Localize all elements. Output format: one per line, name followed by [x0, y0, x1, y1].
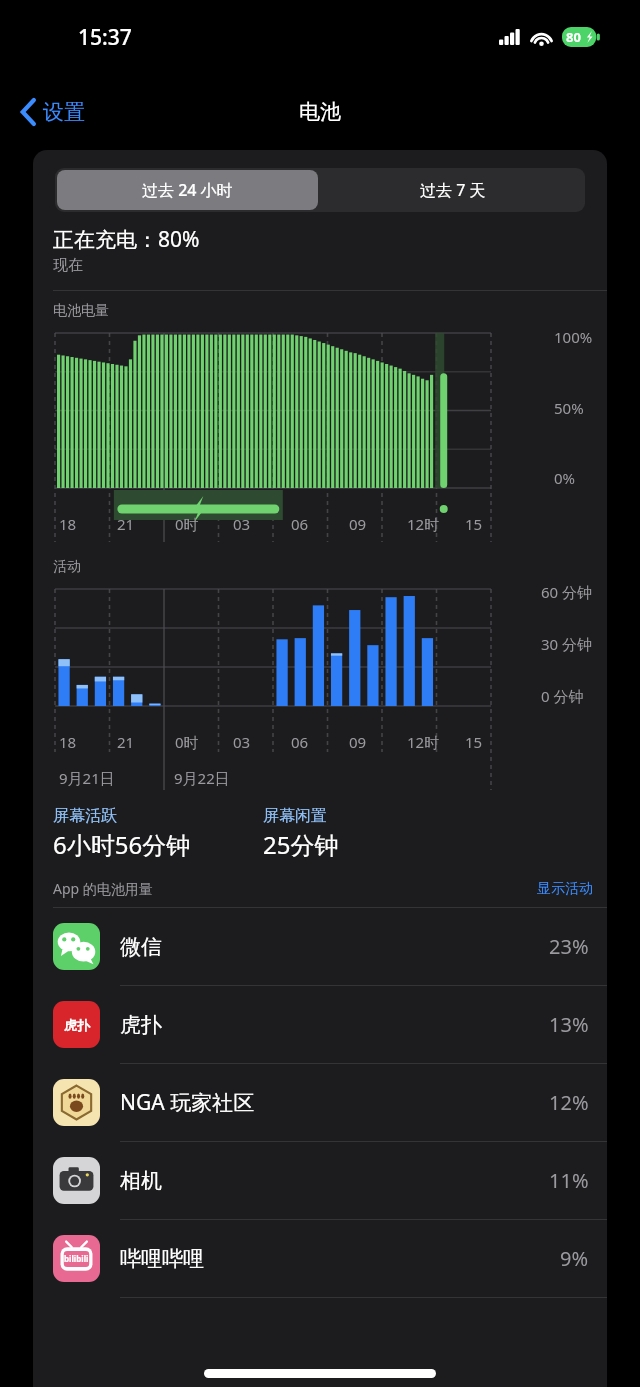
staticText: 60 分钟: [541, 582, 593, 602]
button[interactable]: 显示活动: [537, 880, 593, 898]
button[interactable]: bilibili: [33, 1220, 607, 1298]
staticText: 18: [59, 514, 77, 534]
staticText: 12%: [549, 1089, 589, 1116]
staticText: 电池: [299, 99, 341, 125]
staticText: NGA 玩家社区: [120, 1088, 255, 1117]
staticText: 屏幕活跃: [53, 806, 117, 826]
button[interactable]: 虎扑: [33, 986, 607, 1064]
staticText: 屏幕闲置: [263, 806, 327, 826]
staticText: 15:37: [78, 23, 132, 52]
staticText: 30 分钟: [541, 634, 593, 654]
staticText: 0 分钟: [541, 686, 584, 706]
staticText: 0时: [175, 732, 199, 752]
button[interactable]: 微信: [33, 908, 607, 986]
staticText: 06: [291, 514, 309, 534]
button[interactable]: 相机: [33, 1142, 607, 1220]
staticText: 50%: [554, 398, 584, 418]
staticText: 11%: [549, 1167, 589, 1194]
staticText: 21: [117, 732, 135, 752]
staticText: 21: [117, 514, 135, 534]
staticText: 虎扑: [64, 1017, 90, 1033]
staticText: 9月21日: [59, 768, 115, 788]
button[interactable]: 设置: [18, 93, 89, 131]
staticText: 哔哩哔哩: [120, 1246, 204, 1272]
staticText: 过去 24 小时: [142, 179, 233, 201]
staticText: 15: [465, 732, 483, 752]
staticText: 现在: [53, 256, 83, 275]
staticText: 23%: [549, 933, 589, 960]
staticText: 电池电量: [53, 302, 109, 320]
staticText: 15: [465, 514, 483, 534]
staticText: 设置: [43, 99, 85, 125]
staticText: 微信: [120, 934, 162, 960]
staticText: 正在充电：80%: [53, 225, 200, 254]
staticText: 80: [566, 28, 581, 46]
staticText: 12时: [407, 514, 440, 534]
staticText: 25分钟: [263, 828, 339, 861]
staticText: 9月22日: [174, 768, 230, 788]
staticText: 9%: [560, 1245, 589, 1272]
staticText: 过去 7 天: [420, 179, 486, 201]
staticText: 09: [349, 732, 367, 752]
button[interactable]: 过去 24 小时: [57, 170, 318, 210]
staticText: 100%: [554, 327, 593, 347]
button[interactable]: 过去 7 天: [320, 168, 585, 212]
staticText: 18: [59, 732, 77, 752]
staticText: 06: [291, 732, 309, 752]
staticText: bilibili: [64, 1253, 89, 1264]
staticText: 0时: [175, 514, 199, 534]
staticText: App 的电池用量: [53, 879, 153, 898]
staticText: 6小时56分钟: [53, 828, 191, 861]
button[interactable]: NGA 玩家社区: [33, 1064, 607, 1142]
staticText: 0%: [554, 468, 576, 488]
staticText: 03: [233, 514, 251, 534]
staticText: 显示活动: [537, 880, 593, 898]
staticText: 12时: [407, 732, 440, 752]
staticText: 13%: [549, 1011, 589, 1038]
staticText: 活动: [53, 558, 81, 576]
staticText: 03: [233, 732, 251, 752]
staticText: 09: [349, 514, 367, 534]
staticText: 相机: [120, 1168, 162, 1194]
staticText: 虎扑: [120, 1012, 162, 1038]
